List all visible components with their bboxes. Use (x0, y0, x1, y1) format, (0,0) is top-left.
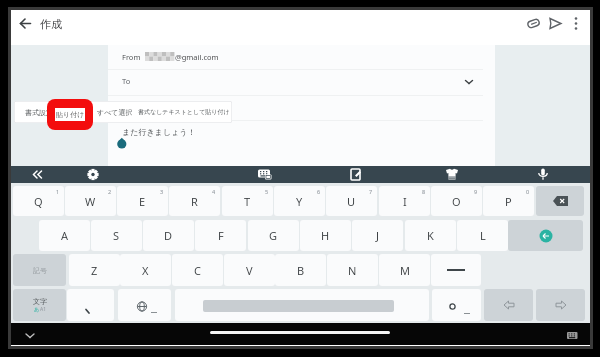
button[interactable]: D (143, 220, 194, 251)
staticText: 3 (160, 188, 164, 195)
staticText: 7 (369, 188, 373, 195)
button[interactable]: V (224, 254, 275, 286)
staticText: 書式設定 (25, 108, 53, 117)
staticText: 6 (317, 188, 321, 195)
button[interactable]: E (117, 186, 168, 216)
button[interactable] (536, 289, 585, 321)
button[interactable] (118, 289, 171, 321)
staticText: 9 (474, 188, 478, 195)
button[interactable] (175, 289, 429, 321)
button[interactable] (25, 166, 47, 183)
staticText: 書式なしテキストとして貼り付け (138, 108, 230, 116)
staticText: V (246, 263, 253, 278)
staticText: X (142, 263, 149, 278)
staticText: 貼り付け (56, 110, 85, 119)
staticText: あ (34, 306, 40, 312)
staticText: O (452, 194, 461, 209)
button[interactable]: 書式設定 (20, 101, 58, 123)
staticText: A1 (40, 306, 47, 313)
button[interactable]: A (39, 220, 90, 251)
staticText: W (85, 194, 96, 209)
button[interactable] (19, 325, 41, 343)
button[interactable]: N (327, 254, 378, 286)
button[interactable] (568, 14, 584, 33)
button[interactable]: M (379, 254, 430, 286)
button[interactable] (254, 166, 276, 183)
button[interactable]: Y (274, 186, 325, 216)
button[interactable] (524, 14, 543, 33)
staticText: To (122, 76, 131, 86)
staticText: Q (34, 194, 43, 209)
staticText: D (164, 228, 173, 243)
button[interactable]: U (326, 186, 377, 216)
button[interactable] (441, 166, 463, 183)
button[interactable]: 記号 (13, 254, 66, 286)
staticText: From (122, 52, 141, 62)
button[interactable]: F (195, 220, 246, 251)
button[interactable]: O (431, 186, 482, 216)
button[interactable]: J (352, 220, 403, 251)
staticText: また行きましょう！ (122, 127, 196, 137)
button[interactable] (67, 289, 114, 321)
button[interactable] (345, 166, 367, 183)
button[interactable] (484, 289, 533, 321)
staticText: P (505, 194, 512, 209)
staticText: U (347, 194, 356, 209)
button[interactable]: X (120, 254, 171, 286)
button[interactable]: T (222, 186, 273, 216)
button[interactable]: 文字 (13, 289, 66, 321)
button[interactable]: W (65, 186, 116, 216)
staticText: 5 (265, 188, 269, 195)
button[interactable]: すべて選択 (93, 101, 137, 123)
staticText: @gmail.com (175, 52, 219, 62)
button[interactable] (82, 166, 104, 183)
staticText: G (269, 228, 278, 243)
button[interactable]: H (300, 220, 351, 251)
staticText: 0 (526, 188, 530, 195)
staticText: C (194, 263, 201, 278)
staticText: 4 (212, 188, 216, 195)
staticText: 8 (422, 188, 426, 195)
button[interactable] (508, 220, 583, 251)
staticText: F (218, 228, 224, 243)
button[interactable] (536, 186, 584, 216)
button[interactable] (210, 331, 390, 334)
staticText: L (480, 228, 486, 243)
staticText: 作成 (40, 17, 62, 31)
staticText: 文字 (33, 297, 47, 306)
button[interactable]: R (169, 186, 220, 216)
staticText: 記号 (33, 266, 47, 275)
staticText: J (376, 228, 380, 243)
staticText: S (113, 228, 120, 243)
button[interactable] (532, 166, 554, 183)
button[interactable]: To (108, 70, 495, 95)
button[interactable]: S (91, 220, 142, 251)
staticText: H (321, 228, 330, 243)
button[interactable] (432, 289, 481, 321)
staticText: M (400, 263, 410, 278)
staticText: 2 (108, 188, 112, 195)
button[interactable]: Z (69, 254, 120, 286)
staticText: T (244, 194, 251, 209)
staticText: N (348, 263, 357, 278)
button[interactable] (546, 14, 565, 33)
button[interactable]: G (248, 220, 299, 251)
staticText: B (297, 263, 305, 278)
staticText: K (427, 228, 434, 243)
button[interactable]: Q (13, 186, 64, 216)
button[interactable]: L (457, 220, 508, 251)
staticText: A (61, 228, 69, 243)
staticText: I (403, 194, 407, 209)
button[interactable] (431, 254, 481, 286)
button[interactable]: 貼り付け (56, 101, 95, 123)
button[interactable]: K (405, 220, 456, 251)
button[interactable]: B (275, 254, 326, 286)
staticText: すべて選択 (97, 108, 133, 117)
button[interactable]: P (483, 186, 534, 216)
button[interactable]: 書式なしテキストとして貼り付け (138, 101, 230, 123)
staticText: Z (91, 263, 98, 278)
button[interactable]: I (379, 186, 430, 216)
button[interactable]: C (172, 254, 223, 286)
button[interactable] (17, 15, 34, 32)
button[interactable] (561, 325, 583, 343)
